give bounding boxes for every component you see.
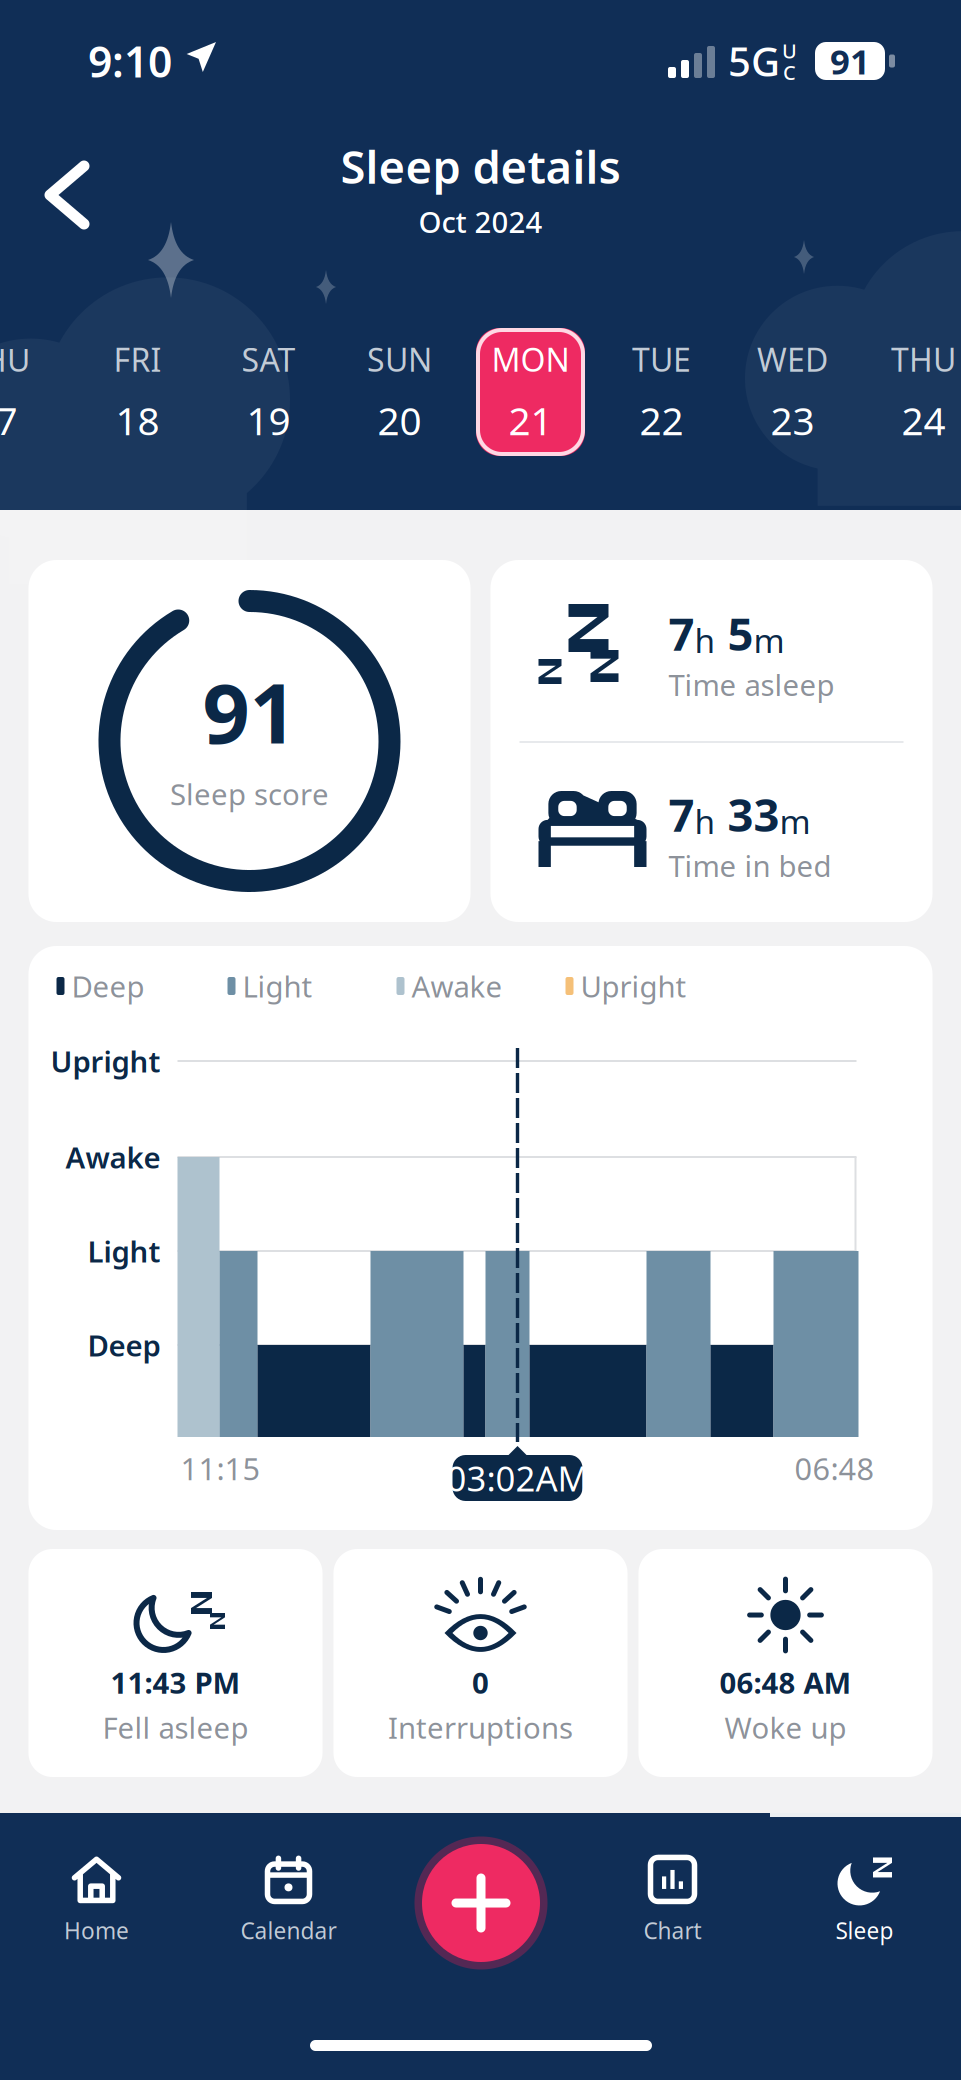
staticText: SAT	[241, 338, 295, 381]
button[interactable]: Calendar	[192, 1851, 384, 1951]
staticText: Sleep score	[170, 774, 329, 813]
staticText: h	[694, 618, 715, 662]
staticText: 06:48 AM	[719, 1663, 851, 1702]
button[interactable]: Add entry	[406, 1828, 556, 1978]
staticText: 7	[668, 784, 694, 844]
staticText: 9:10	[88, 33, 172, 89]
staticText: 5G	[728, 34, 780, 87]
staticText: 7	[668, 603, 694, 663]
staticText: 20	[377, 395, 421, 446]
button[interactable]: Back	[0, 138, 122, 252]
staticText: HU	[0, 338, 30, 381]
staticText: Awake	[65, 1137, 160, 1176]
staticText: Home	[64, 1915, 129, 1945]
staticText: WED	[757, 338, 828, 381]
staticText: 19	[246, 395, 290, 446]
staticText: Oct 2024	[418, 202, 542, 241]
staticText: m	[753, 618, 784, 662]
staticText: 11:43 PM	[110, 1663, 240, 1702]
button[interactable]: SUN	[334, 317, 465, 467]
button[interactable]: SAT	[203, 317, 334, 467]
staticText: TUE	[632, 338, 691, 381]
staticText: 22	[639, 395, 683, 446]
staticText: 11:15	[180, 1448, 260, 1489]
staticText: 24	[901, 395, 945, 446]
staticText: C	[783, 59, 796, 86]
staticText: Calendar	[240, 1915, 336, 1945]
staticText: 23	[770, 395, 814, 446]
staticText: Woke up	[724, 1708, 846, 1747]
staticText: 06:48	[794, 1448, 874, 1489]
button[interactable]: Sleep	[768, 1851, 960, 1951]
staticText: Upright	[50, 1041, 160, 1080]
staticText: MON	[491, 338, 569, 381]
staticText: THU	[891, 338, 956, 381]
staticText: m	[779, 799, 810, 843]
button[interactable]: WED	[727, 317, 858, 467]
staticText: 5	[727, 603, 753, 663]
button[interactable]: THU	[858, 317, 961, 467]
staticText: U	[782, 37, 797, 64]
staticText: 03:02AM	[446, 1455, 588, 1501]
staticText: h	[694, 799, 715, 843]
button[interactable]: HU	[0, 317, 72, 467]
staticText: 33	[727, 784, 779, 844]
staticText: Fell asleep	[102, 1708, 248, 1747]
staticText: Deep	[71, 966, 144, 1005]
staticText: 91	[830, 38, 870, 84]
staticText: 0	[472, 1663, 489, 1702]
staticText: Upright	[580, 966, 686, 1005]
staticText: 18	[115, 395, 159, 446]
staticText: 7	[0, 395, 17, 446]
staticText: Interruptions	[388, 1708, 573, 1747]
staticText: Chart	[643, 1915, 701, 1945]
button[interactable]: Home	[0, 1851, 192, 1951]
staticText: 91	[202, 657, 296, 766]
staticText: Light	[242, 966, 312, 1005]
staticText: Time asleep	[668, 665, 834, 704]
staticText: Awake	[411, 966, 502, 1005]
button[interactable]: TUE	[596, 317, 727, 467]
staticText: Deep	[87, 1325, 160, 1364]
button[interactable]: Chart	[576, 1851, 768, 1951]
staticText: 21	[508, 395, 552, 446]
staticText: Sleep	[835, 1915, 893, 1945]
button[interactable]: MON	[465, 317, 596, 467]
staticText: FRI	[113, 338, 161, 381]
staticText: Light	[87, 1231, 160, 1270]
staticText: Sleep details	[340, 136, 620, 196]
staticText: SUN	[367, 338, 432, 381]
staticText: Time in bed	[668, 846, 831, 885]
button[interactable]: FRI	[72, 317, 203, 467]
